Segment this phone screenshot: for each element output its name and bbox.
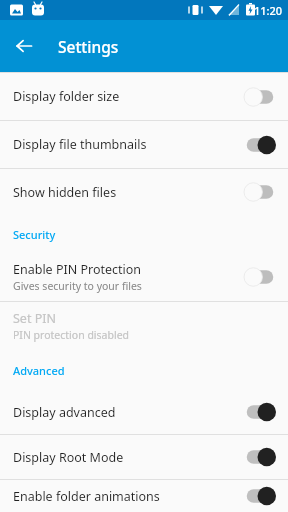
staticText: PIN protection disabled: [13, 328, 130, 342]
staticText: 11:20: [254, 3, 283, 18]
staticText: Set PIN: [13, 310, 56, 327]
button[interactable]: Back: [8, 30, 40, 62]
button[interactable]: Enable PIN Protection: [0, 253, 288, 301]
button[interactable]: Set PIN: [0, 302, 288, 350]
staticText: Settings: [58, 36, 119, 57]
staticText: Display file thumbnails: [13, 136, 147, 153]
button[interactable]: Display file thumbnails: [0, 121, 288, 168]
button[interactable]: Display folder size: [0, 73, 288, 120]
staticText: Display advanced: [13, 404, 116, 421]
button[interactable]: Show hidden files: [0, 169, 288, 215]
button[interactable]: Display Root Mode: [0, 435, 288, 479]
staticText: Enable PIN Protection: [13, 261, 142, 278]
staticText: Enable folder animations: [13, 488, 160, 505]
button[interactable]: Display advanced: [0, 390, 288, 434]
button[interactable]: Enable folder animations: [0, 480, 288, 512]
staticText: Display Root Mode: [13, 449, 124, 466]
staticText: Gives security to your files: [13, 279, 142, 293]
staticText: Display folder size: [13, 88, 120, 105]
staticText: Show hidden files: [13, 184, 117, 201]
staticText: Advanced: [13, 363, 65, 378]
staticText: Security: [13, 227, 56, 242]
